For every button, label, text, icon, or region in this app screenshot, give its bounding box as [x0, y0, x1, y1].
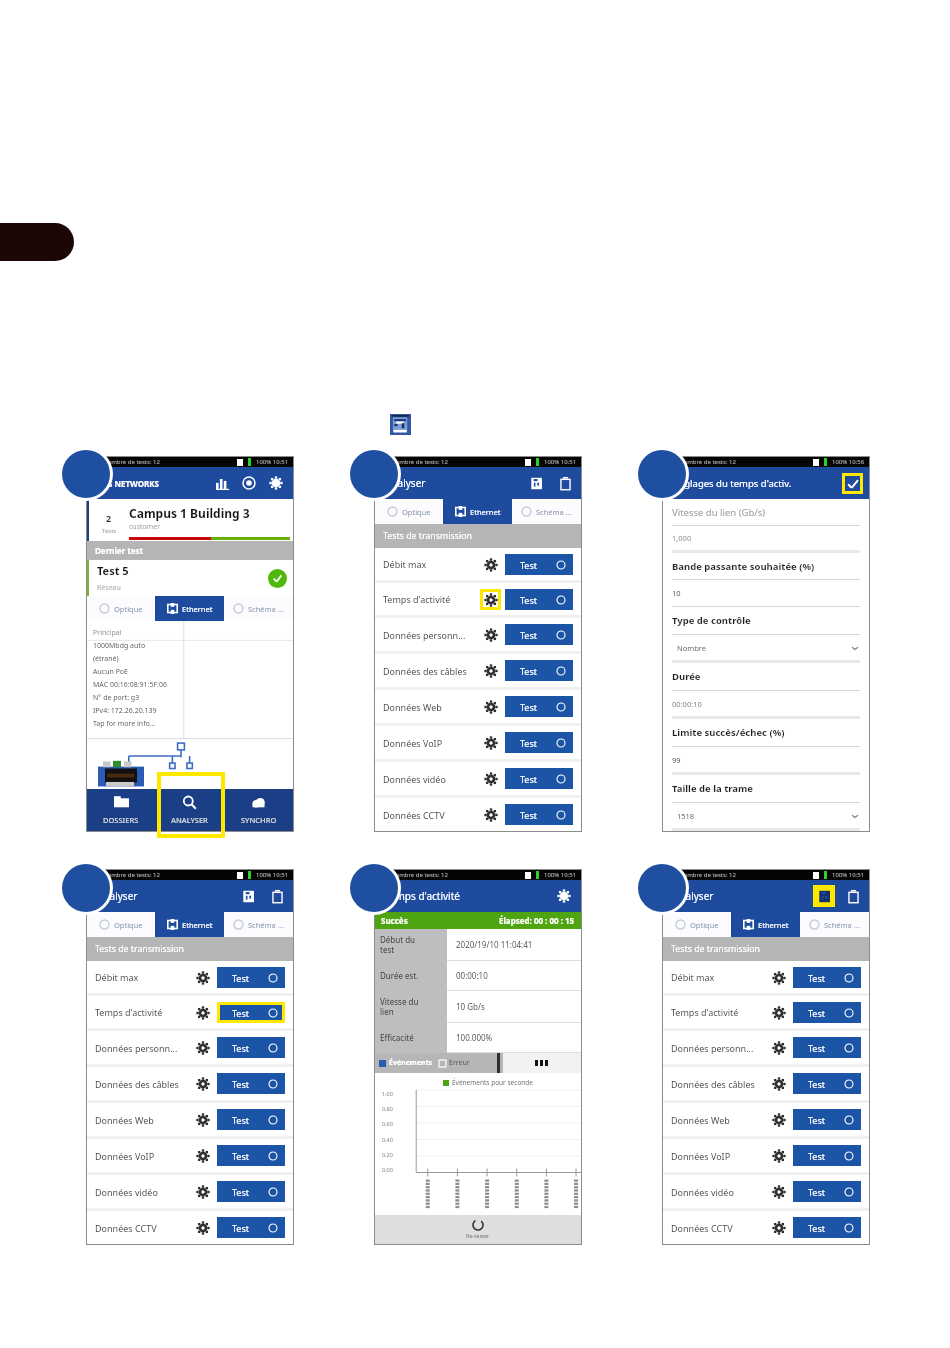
button[interactable]: Test — [793, 1181, 861, 1202]
button[interactable]: Test — [505, 696, 573, 717]
button[interactable]: Réglages Temps d'activité — [192, 1002, 213, 1023]
button[interactable]: Réglages Données CCTV — [192, 1217, 213, 1238]
staticText: Nombre de tests: 12 — [679, 458, 736, 466]
staticText: Nombre de tests: 12 — [679, 871, 736, 879]
button[interactable]: Paramètres — [267, 474, 285, 492]
staticText: Données VoIP — [383, 737, 480, 749]
staticText: Test — [232, 1114, 250, 1126]
button[interactable]: Optique — [87, 912, 155, 937]
button[interactable]: Test — [217, 1109, 285, 1130]
button[interactable]: Test — [217, 1073, 285, 1094]
button[interactable]: Nombre — [677, 643, 860, 653]
button[interactable]: Ethernet — [443, 499, 512, 524]
staticText: Tests de transmission — [383, 530, 472, 542]
button[interactable]: Aide — [240, 474, 258, 492]
button[interactable]: Test — [505, 732, 573, 753]
button[interactable]: Réglages Données VoIP — [480, 732, 501, 753]
button[interactable]: Ethernet — [155, 912, 224, 937]
staticText: Données des câbles — [671, 1078, 768, 1090]
button[interactable]: Test — [793, 1073, 861, 1094]
button[interactable]: Supprimer — [555, 473, 575, 493]
button[interactable]: Test — [217, 1037, 285, 1058]
staticText: Nombre de tests: 12 — [391, 871, 448, 879]
staticText: Données VoIP — [95, 1150, 192, 1162]
button[interactable]: Événements — [379, 1053, 503, 1073]
button[interactable]: Test — [217, 1217, 285, 1238]
button[interactable]: Réglages Données vidéo — [768, 1181, 789, 1202]
staticText: Test — [520, 809, 538, 821]
button[interactable]: Test — [217, 1002, 285, 1023]
button[interactable]: Réglages Débit max — [480, 554, 501, 575]
button[interactable]: Paramètres — [555, 887, 573, 905]
button[interactable]: Test — [793, 967, 861, 988]
button[interactable]: Réglages Données CCTV — [768, 1217, 789, 1238]
button[interactable]: Optique — [87, 596, 155, 621]
button[interactable]: Schéma ... — [224, 912, 293, 937]
button[interactable]: Test — [793, 1002, 861, 1023]
button[interactable]: Test — [217, 1181, 285, 1202]
button[interactable]: Réglages Données Web — [480, 696, 501, 717]
button[interactable]: Test — [793, 1109, 861, 1130]
button[interactable]: Statistiques — [213, 474, 231, 492]
button[interactable]: Ethernet — [155, 596, 224, 621]
button[interactable]: Réglages Données vidéo — [480, 768, 501, 789]
button[interactable]: Rapport — [813, 885, 835, 907]
button[interactable]: Réglages Données des câbles — [192, 1073, 213, 1094]
button[interactable]: Optique — [663, 912, 731, 937]
button[interactable]: Test — [505, 768, 573, 789]
button[interactable]: Réglages Données Web — [192, 1109, 213, 1130]
button[interactable]: ANALYSER — [155, 789, 224, 831]
button[interactable]: Réglages Données personn... — [768, 1037, 789, 1058]
button[interactable]: Réglages Données Web — [768, 1109, 789, 1130]
button[interactable]: Rapport — [525, 472, 547, 494]
button[interactable]: Test — [505, 660, 573, 681]
staticText: Optique — [690, 920, 719, 930]
staticText: ANALYSER — [171, 815, 208, 825]
staticText: Temps d'activité — [95, 1006, 192, 1018]
button[interactable]: Test — [217, 967, 285, 988]
button[interactable]: 1518 — [677, 811, 860, 821]
button[interactable]: Test 5 — [87, 560, 293, 596]
button[interactable]: Rapport — [237, 885, 259, 907]
button[interactable]: Test — [793, 1037, 861, 1058]
button[interactable]: Re-tester — [375, 1215, 581, 1244]
button[interactable]: DOSSIERS — [87, 789, 155, 831]
button[interactable]: 2 — [87, 499, 293, 541]
staticText: Test — [520, 701, 538, 713]
button[interactable]: Schéma ... — [224, 596, 293, 621]
staticText: 10 Gb/s — [456, 1001, 485, 1012]
button[interactable]: Supprimer — [267, 886, 287, 906]
button[interactable]: Test — [793, 1217, 861, 1238]
staticText: Erreur — [449, 1058, 470, 1068]
button[interactable]: Réglages Temps d'activité — [768, 1002, 789, 1023]
staticText: Test — [232, 972, 250, 984]
button[interactable]: Supprimer — [843, 886, 863, 906]
button[interactable]: Réglages Données CCTV — [480, 804, 501, 825]
button[interactable]: SYNCHRO — [224, 789, 293, 831]
button[interactable]: Test — [505, 624, 573, 645]
button[interactable]: Réglages Données des câbles — [768, 1073, 789, 1094]
button[interactable]: Réglages Données personn... — [192, 1037, 213, 1058]
staticText: Test — [520, 594, 538, 606]
button[interactable]: Test — [505, 804, 573, 825]
button[interactable]: Test — [217, 1145, 285, 1166]
button[interactable]: Réglages Données vidéo — [192, 1181, 213, 1202]
button[interactable]: Test — [505, 589, 573, 610]
button[interactable]: Test — [505, 554, 573, 575]
button[interactable]: Réglages Données des câbles — [480, 660, 501, 681]
button[interactable]: Réglages Données VoIP — [768, 1145, 789, 1166]
button[interactable]: Schéma ... — [512, 499, 581, 524]
button[interactable]: Réglages Données personn... — [480, 624, 501, 645]
button[interactable]: Schéma ... — [800, 912, 869, 937]
button[interactable]: Optique — [375, 499, 443, 524]
button[interactable]: Réglages Débit max — [768, 967, 789, 988]
button[interactable]: Réglages Débit max — [192, 967, 213, 988]
button[interactable]: Valider — [842, 473, 863, 494]
staticText: Test — [232, 1007, 250, 1019]
button[interactable]: Réglages Temps d'activité — [483, 592, 498, 607]
button[interactable]: Test — [793, 1145, 861, 1166]
button[interactable]: Réglages Données VoIP — [192, 1145, 213, 1166]
staticText: Efficacité — [380, 1032, 414, 1043]
staticText: Schéma ... — [824, 920, 860, 930]
button[interactable]: Ethernet — [731, 912, 800, 937]
